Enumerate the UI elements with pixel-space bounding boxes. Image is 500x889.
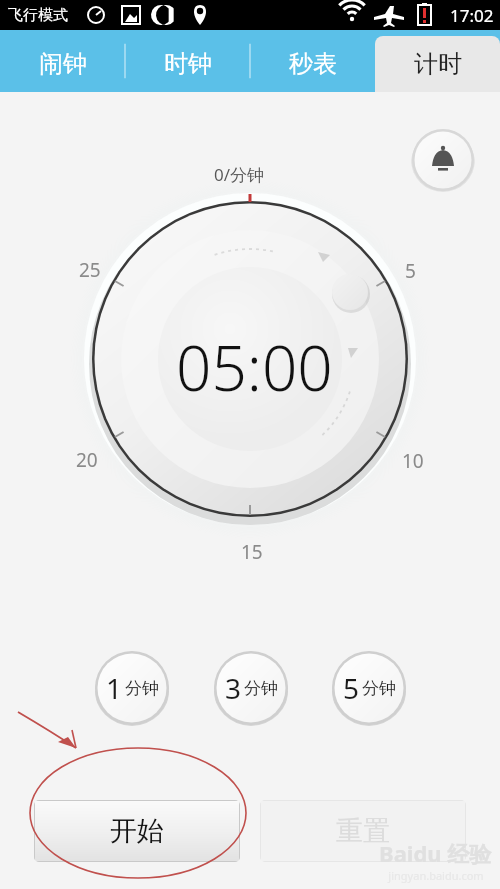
staticText: 25 (79, 257, 101, 283)
staticText: 重置 (336, 814, 390, 848)
button[interactable]: 重置 (260, 800, 466, 862)
staticText: 闹钟 (39, 49, 87, 79)
staticText: 17:02 (450, 4, 494, 27)
staticText: 时钟 (164, 49, 212, 79)
button[interactable]: 时钟 (125, 36, 250, 92)
staticText: 分钟 (362, 678, 396, 699)
staticText: 秒表 (289, 49, 337, 79)
button[interactable]: Alarm sound (411, 128, 475, 192)
staticText: 15 (241, 539, 263, 565)
staticText: jingyan.baidu.com (388, 868, 484, 883)
staticText: 5 (405, 258, 416, 284)
staticText: 20 (76, 447, 98, 473)
staticText: 分钟 (244, 678, 278, 699)
button[interactable]: 计时 (375, 36, 500, 92)
button[interactable]: 秒表 (250, 36, 375, 92)
button[interactable]: 3 (213, 650, 289, 726)
staticText: 计时 (414, 49, 462, 79)
staticText: 05:00 (176, 325, 333, 409)
staticText: 分钟 (125, 678, 159, 699)
staticText: 5 (343, 669, 360, 707)
button[interactable]: 5 (331, 650, 407, 726)
button[interactable]: 闹钟 (0, 36, 125, 92)
staticText: 飞行模式 (8, 6, 68, 25)
staticText: 3 (225, 669, 242, 707)
button[interactable]: 开始 (34, 800, 240, 862)
staticText: 1 (106, 669, 123, 707)
staticText: Baidu 经验 (379, 838, 492, 868)
staticText: 0/分钟 (214, 163, 265, 186)
staticText: 开始 (110, 814, 164, 848)
staticText: 10 (402, 448, 424, 474)
button[interactable]: 1 (94, 650, 170, 726)
